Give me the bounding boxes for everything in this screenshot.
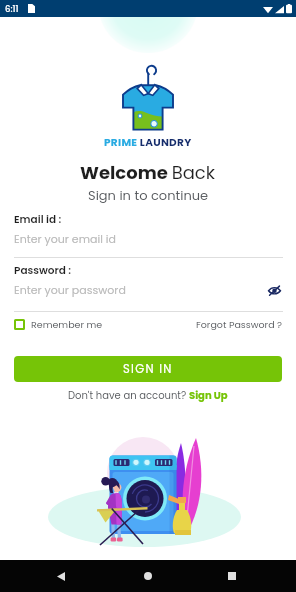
button[interactable]: Forgot Password ?: [196, 318, 283, 331]
staticText: 6:11: [5, 3, 19, 15]
button[interactable]: Remember me: [14, 318, 103, 331]
staticText: Password :: [14, 263, 72, 278]
button[interactable]: Show password: [265, 281, 283, 299]
staticText: Enter your password: [14, 282, 126, 297]
staticText: SIGN IN: [123, 361, 173, 377]
staticText: Email id :: [14, 212, 62, 227]
staticText: Welcome Back: [80, 160, 216, 185]
button[interactable]: Recent apps: [218, 562, 246, 590]
staticText: Remember me: [31, 318, 103, 331]
staticText: Enter your email id: [14, 231, 116, 246]
staticText: Don't have an account?: [68, 388, 189, 402]
button[interactable]: Back: [47, 562, 75, 590]
button[interactable]: Sign Up: [189, 388, 228, 402]
button[interactable]: Home: [134, 562, 162, 590]
staticText: PRIME LAUNDRY: [104, 135, 192, 150]
button[interactable]: SIGN IN: [14, 356, 282, 382]
staticText: Sign in to continue: [88, 186, 209, 204]
